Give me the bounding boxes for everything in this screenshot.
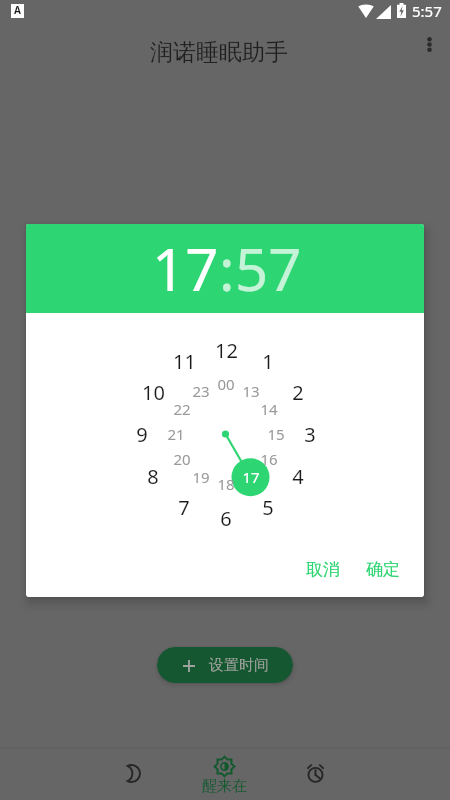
button[interactable]: 7: [166, 493, 202, 521]
staticText: 00: [217, 374, 235, 394]
button[interactable]: 17: [235, 465, 267, 489]
other: Sleep: [127, 764, 141, 783]
staticText: 4: [292, 463, 304, 490]
staticText: 润诺睡眠助手: [150, 38, 288, 67]
button[interactable]: 9: [124, 420, 160, 448]
staticText: 18: [217, 474, 235, 494]
button[interactable]: 6: [208, 504, 244, 532]
button[interactable]: 取消: [296, 551, 350, 588]
staticText: 15: [267, 424, 285, 444]
other: Alarm: [306, 764, 325, 782]
button[interactable]: 确定: [356, 551, 410, 588]
button[interactable]: 21: [160, 422, 192, 446]
staticText: 5: [262, 494, 274, 521]
staticText: 2: [292, 379, 304, 406]
staticText: 21: [167, 424, 185, 444]
button[interactable]: Alarm: [272, 748, 358, 800]
button[interactable]: 12: [208, 336, 244, 364]
staticText: 7: [178, 494, 190, 521]
staticText: 醒来在: [202, 777, 247, 796]
button[interactable]: 8: [135, 462, 171, 490]
staticText: 16: [260, 449, 278, 469]
button[interactable]: 23: [185, 379, 217, 403]
button[interactable]: 22: [166, 397, 198, 421]
staticText: 9: [136, 421, 148, 448]
button[interactable]: 18: [210, 472, 242, 496]
staticText: 13: [242, 381, 260, 401]
button[interactable]: 19: [185, 465, 217, 489]
button[interactable]: 20: [166, 447, 198, 471]
staticText: 12: [215, 337, 238, 364]
staticText: 1: [262, 348, 274, 375]
button[interactable]: 1: [250, 347, 286, 375]
staticText: :: [219, 229, 235, 308]
button[interactable]: 设置时间: [157, 647, 293, 683]
staticText: 22: [173, 399, 191, 419]
staticText: 8: [147, 463, 159, 490]
button[interactable]: 00: [210, 372, 242, 396]
button[interactable]: More options: [413, 28, 445, 60]
button[interactable]: 15: [260, 422, 292, 446]
staticText: A: [14, 3, 21, 17]
staticText: 17: [242, 467, 260, 487]
button[interactable]: Sleep: [91, 748, 177, 800]
button[interactable]: 3: [292, 420, 328, 448]
staticText: 3: [304, 421, 316, 448]
staticText: 14: [260, 399, 278, 419]
button[interactable]: 4: [280, 462, 316, 490]
staticText: 设置时间: [209, 656, 269, 675]
button[interactable]: 醒来在: [181, 748, 267, 800]
staticText: 19: [192, 467, 210, 487]
button[interactable]: 2: [280, 378, 316, 406]
staticText: 20: [173, 449, 191, 469]
staticText: 23: [192, 381, 210, 401]
button[interactable]: 57: [235, 229, 302, 308]
staticText: 11: [173, 348, 196, 375]
button[interactable]: 14: [253, 397, 285, 421]
staticText: 5:57: [412, 1, 442, 21]
staticText: 6: [220, 505, 232, 532]
button[interactable]: 10: [135, 378, 171, 406]
staticText: 10: [142, 379, 165, 406]
button[interactable]: 13: [235, 379, 267, 403]
button[interactable]: 17: [152, 229, 219, 308]
button[interactable]: 16: [253, 447, 285, 471]
button[interactable]: 5: [250, 493, 286, 521]
button[interactable]: 11: [166, 347, 202, 375]
